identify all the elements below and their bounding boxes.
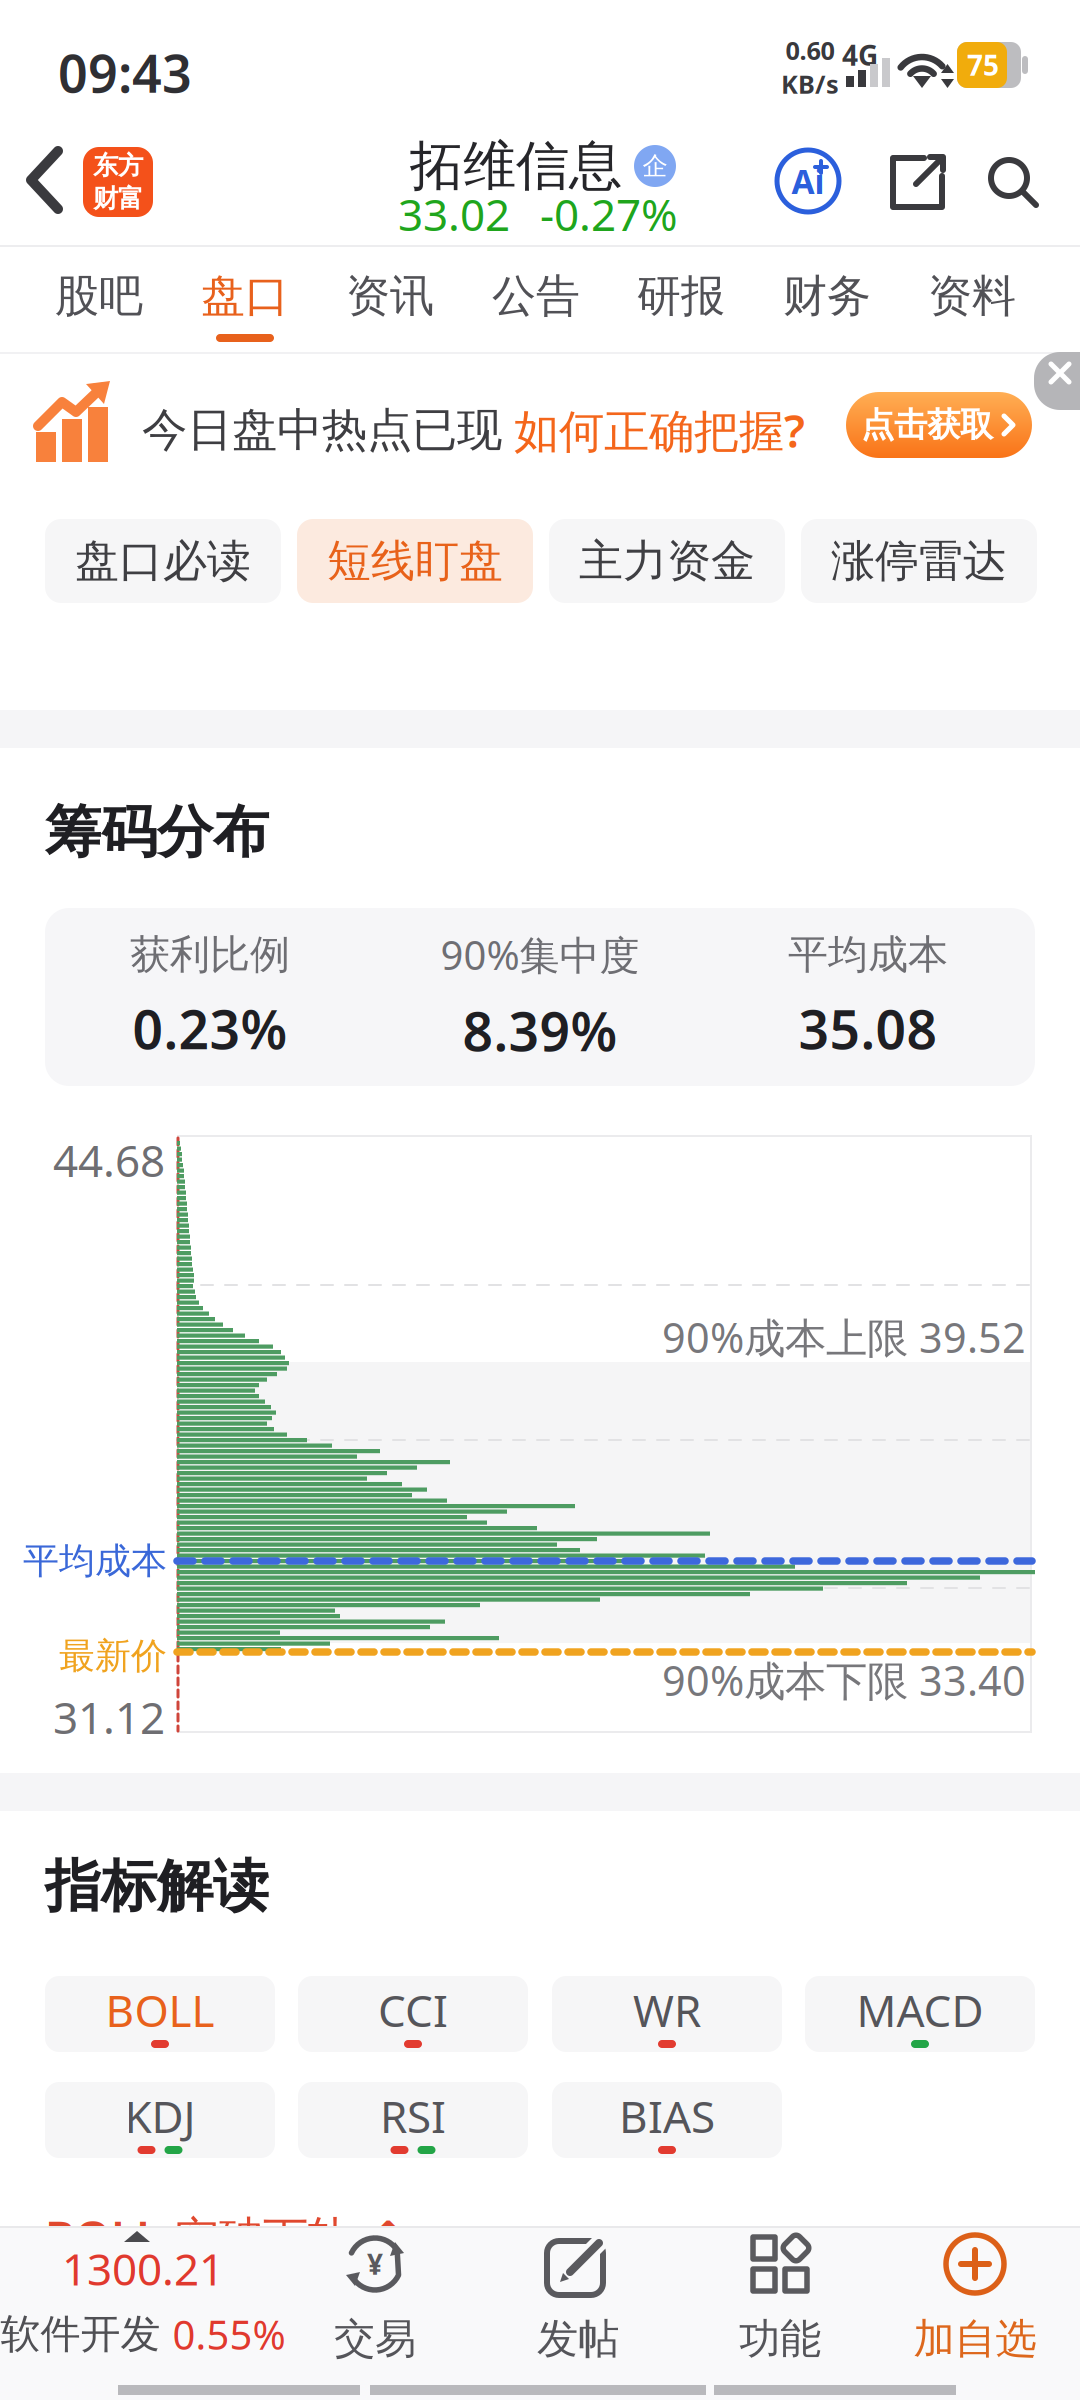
button[interactable]: MACD bbox=[805, 1976, 1035, 2052]
staticText: 最新价 bbox=[59, 1634, 167, 1678]
staticText: 09:43 bbox=[58, 38, 192, 107]
button[interactable]: 返回 bbox=[24, 147, 68, 213]
staticText: 东方 bbox=[93, 150, 143, 181]
staticText: 75 bbox=[967, 46, 999, 84]
staticText: 盘口 bbox=[201, 269, 289, 323]
staticText: 90%成本上限 39.52 bbox=[662, 1310, 1026, 1364]
staticText: 44.68 bbox=[53, 1131, 165, 1189]
staticText: 公告 bbox=[492, 269, 580, 323]
staticText: 平均成本 bbox=[23, 1539, 167, 1583]
button[interactable]: 发帖 bbox=[498, 2227, 658, 2377]
staticText: 盘口必读 bbox=[75, 534, 251, 588]
staticText: 研报 bbox=[637, 269, 725, 323]
button[interactable]: 资讯 bbox=[320, 254, 460, 338]
button[interactable]: 关闭 bbox=[1034, 352, 1080, 410]
staticText: 主力资金 bbox=[579, 534, 755, 588]
staticText: 今日盘中热点已现 bbox=[142, 402, 502, 458]
staticText: 资讯 bbox=[346, 269, 434, 323]
staticText: BIAS bbox=[619, 2087, 715, 2145]
staticText: 0.55% bbox=[172, 2308, 285, 2361]
staticText: 点击获取 bbox=[861, 404, 993, 445]
staticText: 软件开发 bbox=[0, 2310, 160, 2359]
button[interactable]: CCI bbox=[298, 1976, 528, 2052]
staticText: BOLL bbox=[105, 1981, 214, 2039]
staticText: 交易 bbox=[334, 2314, 416, 2364]
button[interactable]: 短线盯盘 bbox=[297, 519, 533, 603]
staticText: KB/s bbox=[781, 67, 839, 101]
button[interactable]: 公告 bbox=[466, 254, 606, 338]
staticText: 拓维信息 bbox=[410, 133, 622, 199]
button[interactable]: 东方财富 bbox=[83, 147, 153, 217]
button[interactable]: 1300.21 bbox=[0, 2240, 298, 2360]
button[interactable]: KDJ bbox=[45, 2082, 275, 2158]
staticText: 1300.21 bbox=[62, 2239, 224, 2298]
staticText: 0.23% bbox=[132, 993, 287, 1064]
staticText: RSI bbox=[380, 2087, 446, 2145]
button[interactable]: 搜索 bbox=[984, 153, 1040, 209]
staticText: 财务 bbox=[783, 269, 871, 323]
button[interactable]: 涨停雷达 bbox=[801, 519, 1037, 603]
button[interactable]: BOLL bbox=[45, 1976, 275, 2052]
staticText: 功能 bbox=[739, 2314, 821, 2364]
staticText: 企 bbox=[642, 150, 667, 181]
button[interactable]: 分享 bbox=[886, 150, 950, 214]
staticText: 资料 bbox=[928, 269, 1016, 323]
staticText: 90%成本下限 33.40 bbox=[662, 1653, 1026, 1707]
button[interactable]: 盘口 bbox=[175, 254, 315, 338]
button[interactable]: RSI bbox=[298, 2082, 528, 2158]
staticText: 平均成本 bbox=[788, 930, 948, 979]
staticText: 短线盯盘 bbox=[327, 534, 503, 588]
staticText: 涨停雷达 bbox=[831, 534, 1007, 588]
staticText: 0.60 bbox=[785, 33, 834, 67]
staticText: 35.08 bbox=[798, 993, 937, 1064]
staticText: 财富 bbox=[93, 183, 143, 214]
staticText: 股吧 bbox=[55, 269, 143, 323]
staticText: BOLL 突破下轨 ↑ bbox=[45, 2206, 407, 2266]
staticText: 33.02 bbox=[398, 185, 510, 243]
button[interactable]: 主力资金 bbox=[549, 519, 785, 603]
button[interactable]: BIAS bbox=[552, 2082, 782, 2158]
button[interactable]: 研报 bbox=[611, 254, 751, 338]
staticText: KDJ bbox=[124, 2087, 195, 2145]
staticText: Ai bbox=[791, 159, 824, 203]
staticText: 发帖 bbox=[537, 2314, 619, 2364]
staticText: -0.27% bbox=[540, 185, 678, 243]
staticText: 8.39% bbox=[462, 995, 617, 1066]
button[interactable]: ¥ bbox=[295, 2227, 455, 2377]
button[interactable]: WR bbox=[552, 1976, 782, 2052]
staticText: WR bbox=[633, 1981, 701, 2039]
button[interactable]: 资料 bbox=[902, 254, 1042, 338]
staticText: CCI bbox=[378, 1981, 448, 2039]
staticText: 90%集中度 bbox=[440, 928, 639, 981]
staticText: 加自选 bbox=[913, 2314, 1036, 2364]
button[interactable]: 股吧 bbox=[29, 254, 169, 338]
staticText: 指标解读 bbox=[45, 1852, 269, 1921]
button[interactable]: 功能 bbox=[700, 2227, 860, 2377]
button[interactable]: 加自选 bbox=[890, 2227, 1060, 2377]
button[interactable]: 点击获取 bbox=[846, 392, 1032, 458]
button[interactable]: 财务 bbox=[757, 254, 897, 338]
button[interactable]: AI 助手 bbox=[775, 148, 841, 214]
staticText: 4G bbox=[842, 36, 878, 74]
staticText: 获利比例 bbox=[130, 930, 290, 979]
staticText: 筹码分布 bbox=[45, 798, 269, 867]
button[interactable]: 盘口必读 bbox=[45, 519, 281, 603]
button[interactable]: 今日盘中热点已现 bbox=[142, 400, 805, 460]
staticText: 如何正确把握? bbox=[514, 400, 805, 460]
staticText: MACD bbox=[856, 1981, 983, 2039]
staticText: 31.12 bbox=[53, 1688, 165, 1746]
staticText: ¥ bbox=[367, 2245, 383, 2283]
